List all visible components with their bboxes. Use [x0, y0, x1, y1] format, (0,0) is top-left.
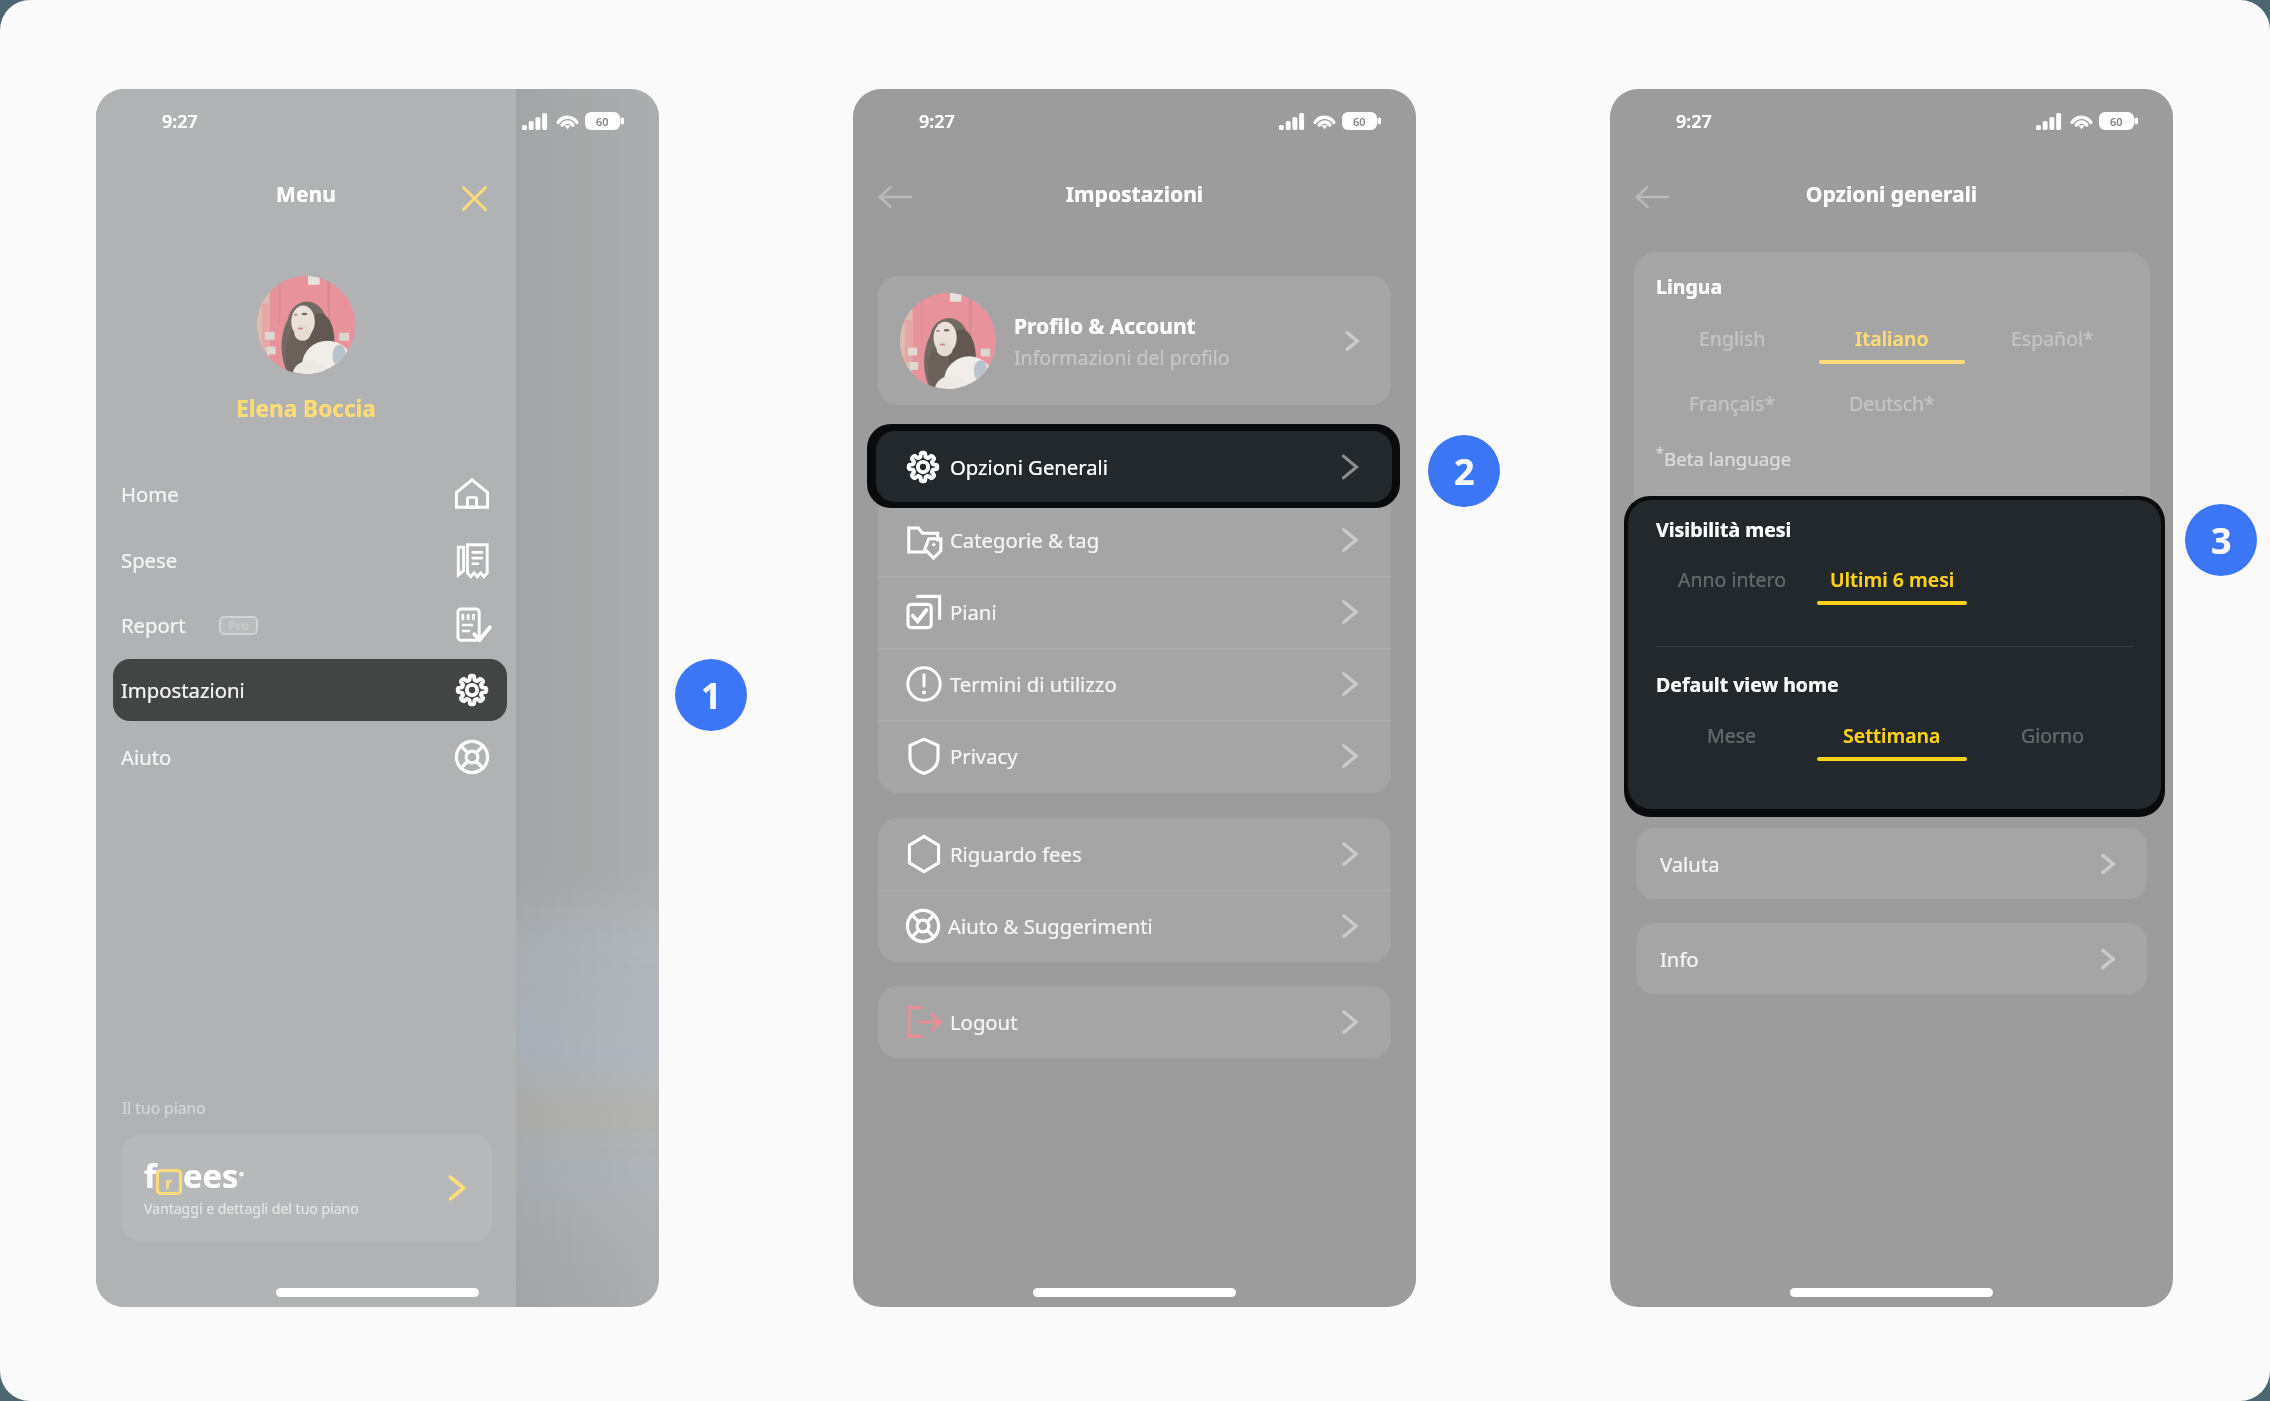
staticText: Opzioni generali [1610, 179, 2173, 208]
button[interactable]: Indietro [866, 168, 924, 226]
button[interactable]: Home [113, 463, 507, 525]
staticText: Lingua [1656, 273, 1723, 300]
button[interactable]: Spese [113, 529, 507, 591]
staticText: Report [121, 611, 186, 639]
button[interactable]: Report [113, 594, 507, 656]
staticText: Pro [228, 617, 249, 634]
button[interactable]: Italiano [1782, 325, 2002, 364]
staticText: Default view home [1656, 671, 1839, 698]
button[interactable]: Mese [1622, 722, 1842, 757]
staticText: 60 [2110, 114, 2123, 129]
staticText: Spese [121, 546, 178, 574]
staticText: English [1699, 325, 1766, 352]
button[interactable]: Piani [878, 576, 1391, 648]
button[interactable]: Riguardo fees [878, 818, 1391, 890]
staticText: * [1656, 443, 1664, 462]
staticText: Aiuto [121, 743, 172, 771]
staticText: Elena Boccia [96, 393, 516, 424]
staticText: Italiano [1855, 325, 1929, 352]
staticText: 2 [1454, 447, 1475, 496]
button[interactable]: Indietro [1623, 168, 1681, 226]
button[interactable]: Settimana [1782, 722, 2002, 761]
staticText: Privacy [950, 742, 1018, 770]
staticText: Logout [950, 1008, 1018, 1036]
button[interactable]: Aiuto & Suggerimenti [878, 890, 1391, 962]
staticText: f [144, 1153, 157, 1198]
button[interactable]: English [1622, 325, 1842, 360]
staticText: 9:27 [919, 109, 955, 133]
staticText: Riguardo fees [950, 840, 1082, 868]
staticText: Impostazioni [853, 179, 1416, 208]
staticText: 9:27 [162, 109, 198, 133]
button[interactable]: Valuta [1636, 828, 2147, 899]
button[interactable]: Privacy [878, 720, 1391, 792]
staticText: Anno intero [1678, 566, 1787, 593]
staticText: Valuta [1660, 850, 1720, 878]
staticText: Settimana [1843, 722, 1941, 749]
staticText: Visibilità mesi [1656, 516, 1792, 543]
staticText: Français* [1689, 390, 1776, 417]
staticText: 60 [596, 114, 609, 129]
staticText: 9:27 [1676, 109, 1712, 133]
button[interactable]: Aiuto [113, 726, 507, 788]
button[interactable]: Giorno [1942, 722, 2162, 757]
button[interactable]: Anno intero [1622, 566, 1842, 601]
staticText: Info [1660, 945, 1699, 973]
staticText: Impostazioni [121, 676, 245, 704]
button[interactable]: f [122, 1135, 492, 1241]
button[interactable]: Opzioni Generali [876, 431, 1392, 502]
button[interactable]: Impostazioni [113, 659, 507, 721]
staticText: Menu [96, 179, 516, 208]
staticText: Español* [2011, 325, 2094, 352]
staticText: Mese [1707, 722, 1757, 749]
staticText: 60 [1353, 114, 1366, 129]
staticText: Home [121, 480, 179, 508]
button[interactable]: Chiudi menu [445, 169, 503, 227]
button[interactable]: Categorie & tag [878, 504, 1391, 576]
staticText: Informazioni del profilo [1014, 344, 1230, 371]
staticText: Aiuto & Suggerimenti [948, 912, 1153, 940]
staticText: ° [239, 1168, 244, 1184]
staticText: 3 [2211, 516, 2232, 565]
button[interactable]: Info [1636, 923, 2147, 994]
staticText: Opzioni Generali [950, 453, 1109, 481]
button[interactable]: Ultimi 6 mesi [1782, 566, 2002, 605]
staticText: Profilo & Account [1014, 311, 1196, 340]
staticText: Beta language [1664, 446, 1792, 471]
staticText: Deutsch* [1849, 390, 1935, 417]
staticText: Ultimi 6 mesi [1830, 566, 1955, 593]
staticText: Giorno [2021, 722, 2084, 749]
staticText: Categorie & tag [950, 526, 1100, 554]
button[interactable]: Profilo & Account [878, 276, 1391, 405]
staticText: 1 [701, 671, 722, 720]
staticText: Il tuo piano [122, 1097, 206, 1118]
button[interactable]: Logout [878, 986, 1391, 1058]
staticText: Vantaggi e dettagli del tuo piano [144, 1199, 359, 1218]
button[interactable]: Español* [1942, 325, 2162, 360]
staticText: ees [183, 1153, 239, 1198]
button[interactable]: Termini di utilizzo [878, 648, 1391, 720]
staticText: Termini di utilizzo [950, 670, 1117, 698]
staticText: Piani [950, 598, 997, 626]
staticText: r [165, 1171, 173, 1193]
